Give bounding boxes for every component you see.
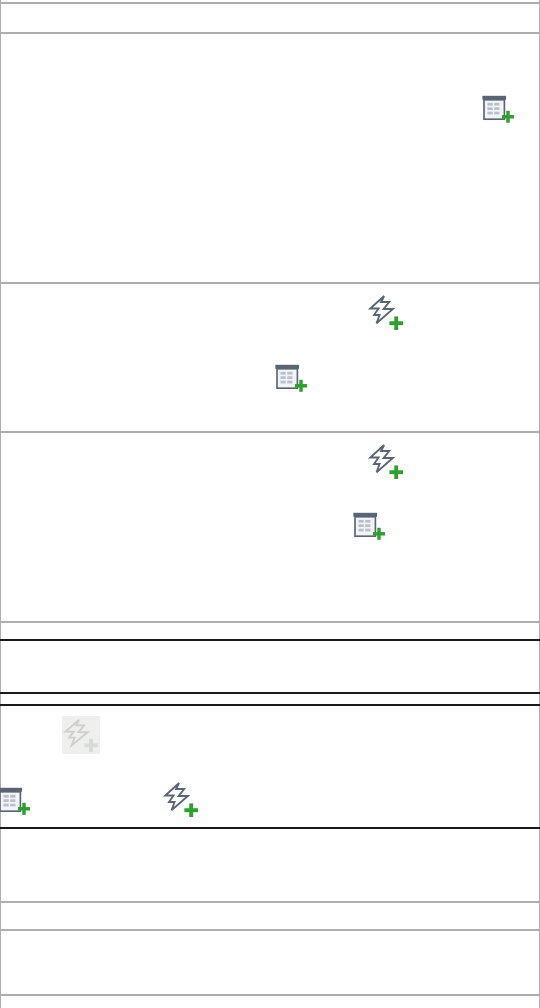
button[interactable]: Add table <box>484 94 514 124</box>
button[interactable]: Add table <box>355 511 385 541</box>
button[interactable]: Add action <box>369 445 403 479</box>
button[interactable]: Add table <box>277 363 307 393</box>
button[interactable]: Add action disabled <box>62 716 100 754</box>
button[interactable]: Add action <box>369 296 403 330</box>
button[interactable]: Add table <box>0 786 30 816</box>
button[interactable]: Add action <box>164 783 198 817</box>
